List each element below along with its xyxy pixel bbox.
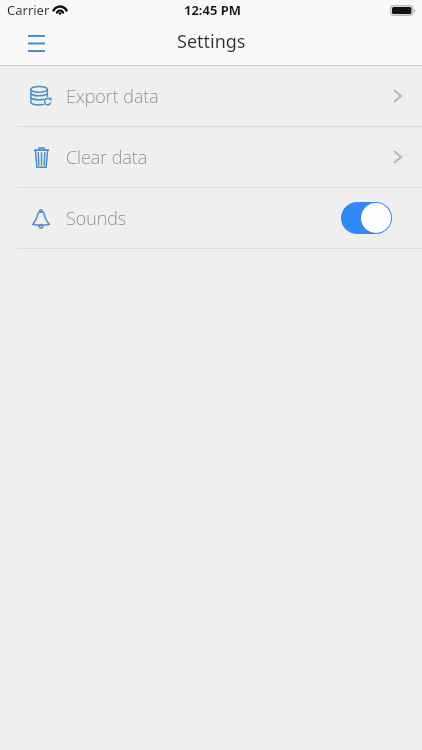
staticText: Carrier <box>7 1 50 19</box>
staticText: Sounds <box>66 206 127 231</box>
staticText: Clear data <box>66 145 148 170</box>
staticText: 12:45 PM <box>184 1 242 19</box>
staticText: Settings <box>177 29 246 54</box>
button[interactable]: Sounds <box>0 188 422 248</box>
button[interactable]: Sounds toggle <box>341 202 392 234</box>
button[interactable]: Menu <box>14 21 58 65</box>
staticText: Export data <box>66 84 159 109</box>
button[interactable]: Export data <box>0 66 422 126</box>
button[interactable]: Clear data <box>0 127 422 187</box>
